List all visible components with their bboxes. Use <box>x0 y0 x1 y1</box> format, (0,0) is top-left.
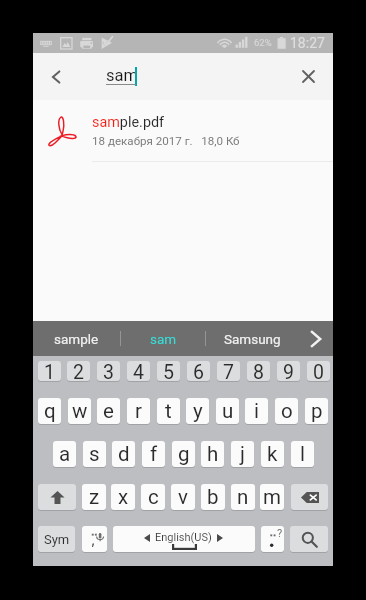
staticText: y <box>193 399 203 423</box>
staticText: Samsung <box>224 331 281 347</box>
staticText: e <box>103 399 114 423</box>
staticText: a <box>59 442 71 466</box>
staticText: sam <box>106 66 138 85</box>
button[interactable]: d <box>112 441 135 467</box>
button[interactable]: x <box>111 484 135 510</box>
staticText: 4 <box>133 361 144 381</box>
button[interactable]: sam <box>120 321 206 356</box>
staticText: o <box>281 399 293 423</box>
button[interactable]: Back <box>38 59 74 95</box>
button[interactable]: 6 <box>187 361 210 381</box>
button[interactable]: Comma <box>82 526 107 552</box>
staticText: n <box>237 485 249 509</box>
button[interactable]: Search <box>290 526 328 552</box>
staticText: j <box>240 442 245 466</box>
button[interactable]: Space <box>113 526 255 552</box>
staticText: s <box>89 442 100 466</box>
button[interactable]: e <box>97 398 120 424</box>
button[interactable]: sample <box>33 321 120 356</box>
button[interactable]: o <box>275 398 298 424</box>
staticText: sample.pdf <box>92 114 165 131</box>
staticText: g <box>178 442 190 466</box>
staticText: c <box>148 485 159 509</box>
button[interactable]: 8 <box>247 361 270 381</box>
staticText: ? <box>277 527 283 540</box>
button[interactable]: 3 <box>97 361 120 381</box>
staticText: u <box>222 399 234 423</box>
button[interactable]: Period <box>261 526 284 552</box>
button[interactable]: 9 <box>277 361 300 381</box>
staticText: v <box>178 485 188 509</box>
staticText: 7 <box>223 361 234 381</box>
staticText: 18:27 <box>290 35 325 51</box>
staticText: q <box>44 399 56 423</box>
button[interactable]: p <box>305 398 328 424</box>
staticText: f <box>150 442 158 466</box>
staticText: Sym <box>44 532 70 547</box>
button[interactable]: 7 <box>217 361 240 381</box>
button[interactable]: u <box>216 398 239 424</box>
staticText: l <box>300 442 305 466</box>
button[interactable]: m <box>260 484 284 510</box>
button[interactable]: z <box>82 484 106 510</box>
button[interactable]: q <box>38 398 61 424</box>
button[interactable]: Shift <box>38 484 76 510</box>
staticText: 9 <box>283 361 294 381</box>
staticText: 5 <box>163 361 174 381</box>
staticText: 8 <box>253 361 264 381</box>
staticText: 62% <box>254 37 272 48</box>
staticText: 1 <box>44 361 55 381</box>
button[interactable]: r <box>127 398 150 424</box>
button[interactable]: h <box>201 441 224 467</box>
button[interactable]: i <box>245 398 268 424</box>
staticText: k <box>267 442 278 466</box>
staticText: z <box>89 485 100 509</box>
button[interactable]: 0 <box>307 361 330 381</box>
button[interactable]: Sym <box>38 526 75 552</box>
button[interactable]: 5 <box>157 361 180 381</box>
staticText: r <box>135 399 142 423</box>
staticText: d <box>118 442 130 466</box>
button[interactable]: b <box>201 484 225 510</box>
button[interactable]: Samsung <box>206 321 299 356</box>
button[interactable]: j <box>231 441 254 467</box>
button[interactable]: c <box>141 484 165 510</box>
button[interactable]: 2 <box>67 361 90 381</box>
button[interactable]: v <box>171 484 195 510</box>
button[interactable]: Clear search <box>291 59 325 93</box>
button[interactable]: More suggestions <box>298 321 333 356</box>
staticText: h <box>207 442 219 466</box>
button[interactable]: g <box>172 441 195 467</box>
button[interactable]: sample.pdf <box>33 100 333 161</box>
staticText: 3 <box>103 361 114 381</box>
staticText: b <box>207 485 219 509</box>
staticText: x <box>118 485 129 509</box>
staticText: sam <box>150 331 177 347</box>
button[interactable]: 1 <box>38 361 61 381</box>
button[interactable]: w <box>68 398 91 424</box>
button[interactable]: y <box>186 398 209 424</box>
staticText: t <box>165 399 172 423</box>
staticText: sample <box>54 331 99 347</box>
staticText: English(US) <box>155 531 212 544</box>
staticText: 0 <box>313 361 324 381</box>
button[interactable]: l <box>291 441 314 467</box>
staticText: 2 <box>73 361 84 381</box>
button[interactable]: t <box>157 398 180 424</box>
button[interactable]: s <box>83 441 106 467</box>
button[interactable]: 4 <box>127 361 150 381</box>
button[interactable]: a <box>53 441 76 467</box>
button[interactable]: Backspace <box>291 484 328 510</box>
staticText: w <box>72 399 88 423</box>
staticText: m <box>263 485 281 509</box>
staticText: 18 декабря 2017 г. 18,0 Кб <box>92 134 240 148</box>
staticText: p <box>311 399 323 423</box>
button[interactable]: k <box>261 441 284 467</box>
staticText: 6 <box>193 361 204 381</box>
button[interactable]: f <box>142 441 165 467</box>
staticText: i <box>254 399 259 423</box>
button[interactable]: n <box>231 484 255 510</box>
